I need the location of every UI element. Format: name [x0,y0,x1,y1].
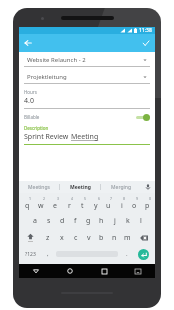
staticText: g [86,216,91,226]
button[interactable]: Enter [133,246,154,262]
button[interactable]: Recents [87,264,121,278]
staticText: ?123 [25,251,36,258]
staticText: 7 [110,196,113,201]
staticText: Meetings [28,184,50,191]
button[interactable]: 9 [128,195,141,212]
button[interactable]: s [42,212,56,229]
button[interactable]: . [120,246,133,262]
button[interactable]: d [56,212,69,229]
staticText: n [112,233,117,243]
button[interactable]: h [95,212,108,229]
staticText: x [60,233,64,243]
button[interactable]: 5 [76,195,89,212]
button[interactable]: l [134,212,147,229]
button[interactable]: Shift [20,229,41,246]
staticText: Website Relaunch - 2 [27,56,86,64]
staticText: j [114,216,116,226]
button[interactable]: Voice input [141,181,155,193]
staticText: q [25,201,30,211]
staticText: t [81,201,84,211]
staticText: w [38,201,44,211]
button[interactable]: Back [19,264,53,278]
button[interactable]: 8 [115,195,128,212]
staticText: Projektleitung [27,73,67,81]
staticText: 9 [136,196,139,201]
staticText: 5 [84,196,87,201]
staticText: , [47,250,49,258]
staticText: 4.0 [24,96,34,106]
staticText: 11:38 [139,27,152,34]
staticText: f [74,216,77,226]
button[interactable]: Space [56,248,118,260]
button[interactable]: Save [137,34,155,52]
staticText: c [74,233,78,243]
staticText: d [60,216,65,226]
staticText: s [47,216,51,226]
button[interactable]: 6 [89,195,102,212]
staticText: Hours [24,89,37,95]
staticText: h [99,216,104,226]
staticText: . [126,250,128,258]
staticText: Description [24,125,49,131]
staticText: 1 [29,196,32,201]
button[interactable]: n [108,229,121,246]
button[interactable]: 1 [20,195,34,212]
staticText: 4 [71,196,74,201]
staticText: o [132,201,137,211]
button[interactable]: 2 [34,195,48,212]
button[interactable]: Home [53,264,87,278]
button[interactable]: Meeting [60,181,100,193]
staticText: z [46,233,50,243]
button[interactable]: m [121,229,134,246]
staticText: 8 [123,196,126,201]
staticText: Meeting [71,132,99,142]
staticText: l [140,216,142,226]
staticText: m [124,233,131,243]
button[interactable]: g [82,212,95,229]
staticText: u [106,201,111,211]
staticText: 2 [43,196,46,201]
staticText: 3 [57,196,60,201]
button[interactable]: v [82,229,95,246]
button[interactable]: 3 [48,195,62,212]
button[interactable]: 0 [141,195,154,212]
button[interactable]: f [69,212,82,229]
button[interactable]: Meetings [19,181,59,193]
button[interactable]: j [108,212,121,229]
staticText: Meeting [70,184,91,191]
button[interactable]: Billable [24,113,150,121]
button[interactable]: , [41,246,54,262]
button[interactable]: Backspace [134,229,154,246]
button[interactable]: 4 [62,195,76,212]
button[interactable]: z [41,229,55,246]
staticText: i [121,201,123,211]
staticText: p [145,201,150,211]
button[interactable]: x [55,229,69,246]
staticText: k [126,216,130,226]
button[interactable]: c [69,229,82,246]
button[interactable]: Projektleitung [24,73,150,84]
staticText: b [99,233,104,243]
button[interactable]: Back [19,34,37,52]
staticText: r [68,201,71,211]
button[interactable]: Hide keyboard [121,264,155,278]
button[interactable]: 7 [102,195,115,212]
staticText: 6 [98,196,101,201]
staticText: v [87,233,91,243]
staticText: Merging [111,184,131,191]
staticText: Billable [24,114,40,120]
staticText: e [53,201,57,211]
staticText: a [33,216,37,226]
button[interactable]: Merging [101,181,141,193]
staticText: y [94,201,98,211]
button[interactable]: Website Relaunch - 2 [24,56,150,67]
button[interactable]: ?123 [20,246,41,262]
button[interactable]: k [121,212,134,229]
button[interactable]: a [28,212,42,229]
staticText: 0 [149,196,152,201]
staticText: Sprint Review [24,132,71,142]
button[interactable]: b [95,229,108,246]
